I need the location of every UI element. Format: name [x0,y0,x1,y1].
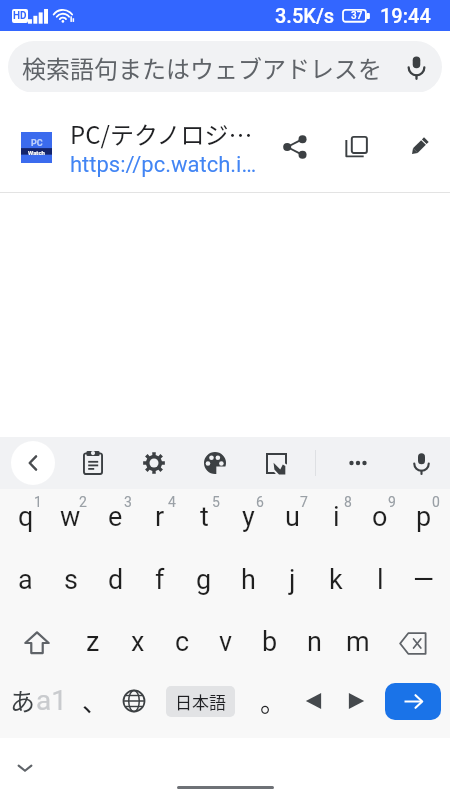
button[interactable]: y [226,490,270,552]
button[interactable]: s [48,552,93,614]
staticText: 0 [432,494,440,510]
button[interactable]: a [3,552,48,614]
button[interactable]: あ [0,676,76,738]
staticText: p [416,501,432,533]
button[interactable]: PC [0,92,450,192]
staticText: PC [31,138,43,149]
button[interactable]: Enter [385,683,441,720]
staticText: b [262,626,278,658]
staticText: z [86,626,100,658]
button[interactable]: j [270,552,314,614]
staticText: 3.5K/s [275,4,335,27]
staticText: 2 [79,494,87,510]
button[interactable]: Settings [133,442,175,484]
button[interactable]: h [226,552,270,614]
button[interactable]: Shift [3,614,70,676]
staticText: r [155,501,165,533]
button[interactable]: Backspace [380,614,446,676]
button[interactable]: i [314,490,358,552]
staticText: 37 [351,10,363,22]
staticText: y [242,501,255,533]
staticText: — [413,564,435,596]
staticText: n [307,626,322,658]
button[interactable]: Move cursor right [339,676,383,738]
staticText: a [18,564,33,596]
staticText: d [108,564,124,596]
staticText: PC/テクノロジ… [70,116,253,151]
button[interactable]: Share [264,116,326,178]
staticText: w [60,501,81,533]
button[interactable]: 検索語句またはウェブアドレスを [8,41,442,93]
staticText: s [64,564,78,596]
button[interactable]: r [138,490,182,552]
button[interactable]: Clipboard [72,442,114,484]
staticText: k [329,564,343,596]
button[interactable]: q [3,490,48,552]
staticText: 検索語句またはウェブアドレスを [22,50,390,85]
staticText: j [289,564,296,596]
staticText: f [155,564,165,596]
button[interactable]: w [48,490,93,552]
button[interactable]: Change language [118,676,166,738]
staticText: l [377,564,384,596]
staticText: a1 [36,684,67,717]
staticText: 9 [388,494,396,510]
button[interactable]: m [336,614,380,676]
staticText: o [372,501,388,533]
button[interactable]: Hide keyboard [5,748,45,788]
button[interactable]: l [358,552,402,614]
staticText: 19:44 [380,4,431,27]
button[interactable]: g [182,552,226,614]
staticText: u [285,501,300,533]
staticText: 8 [344,494,352,510]
button[interactable]: v [204,614,248,676]
button[interactable]: Back [11,441,55,485]
button[interactable]: e [93,490,138,552]
button[interactable]: u [270,490,314,552]
button[interactable]: 日本語 [166,676,255,738]
button[interactable]: k [314,552,358,614]
staticText: https://pc.watch.i… [70,152,257,178]
staticText: 。 [260,682,287,720]
button[interactable]: — [402,552,446,614]
staticText: 日本語 [175,689,226,714]
staticText: HD [13,10,27,22]
button[interactable]: Voice search [390,41,442,93]
staticText: 1 [34,494,42,510]
staticText: q [18,501,34,533]
button[interactable]: z [70,614,115,676]
staticText: 4 [168,494,176,510]
button[interactable]: p [402,490,446,552]
button[interactable]: Theme [194,442,236,484]
button[interactable]: More options [337,442,379,484]
button[interactable]: d [93,552,138,614]
button[interactable]: Sticker [255,442,297,484]
staticText: m [346,626,370,658]
staticText: あ [10,682,36,718]
button[interactable]: b [248,614,292,676]
staticText: g [196,564,212,596]
staticText: 5 [212,494,220,510]
button[interactable]: Copy [326,116,388,178]
staticText: x [131,626,145,658]
staticText: h [241,564,256,596]
button[interactable]: c [160,614,204,676]
staticText: c [175,626,190,658]
staticText: 3 [124,494,132,510]
button[interactable]: 。 [255,676,295,738]
button[interactable]: n [292,614,336,676]
button[interactable]: 、 [76,676,118,738]
button[interactable]: x [115,614,160,676]
staticText: Watch [28,149,45,156]
staticText: t [200,501,209,533]
button[interactable]: Voice input [400,442,442,484]
button[interactable]: f [138,552,182,614]
button[interactable]: t [182,490,226,552]
button[interactable]: Move cursor left [295,676,339,738]
staticText: v [219,626,233,658]
staticText: e [108,501,123,533]
button[interactable]: Edit [388,116,450,178]
button[interactable]: o [358,490,402,552]
staticText: i [333,501,340,533]
staticText: 6 [256,494,264,510]
